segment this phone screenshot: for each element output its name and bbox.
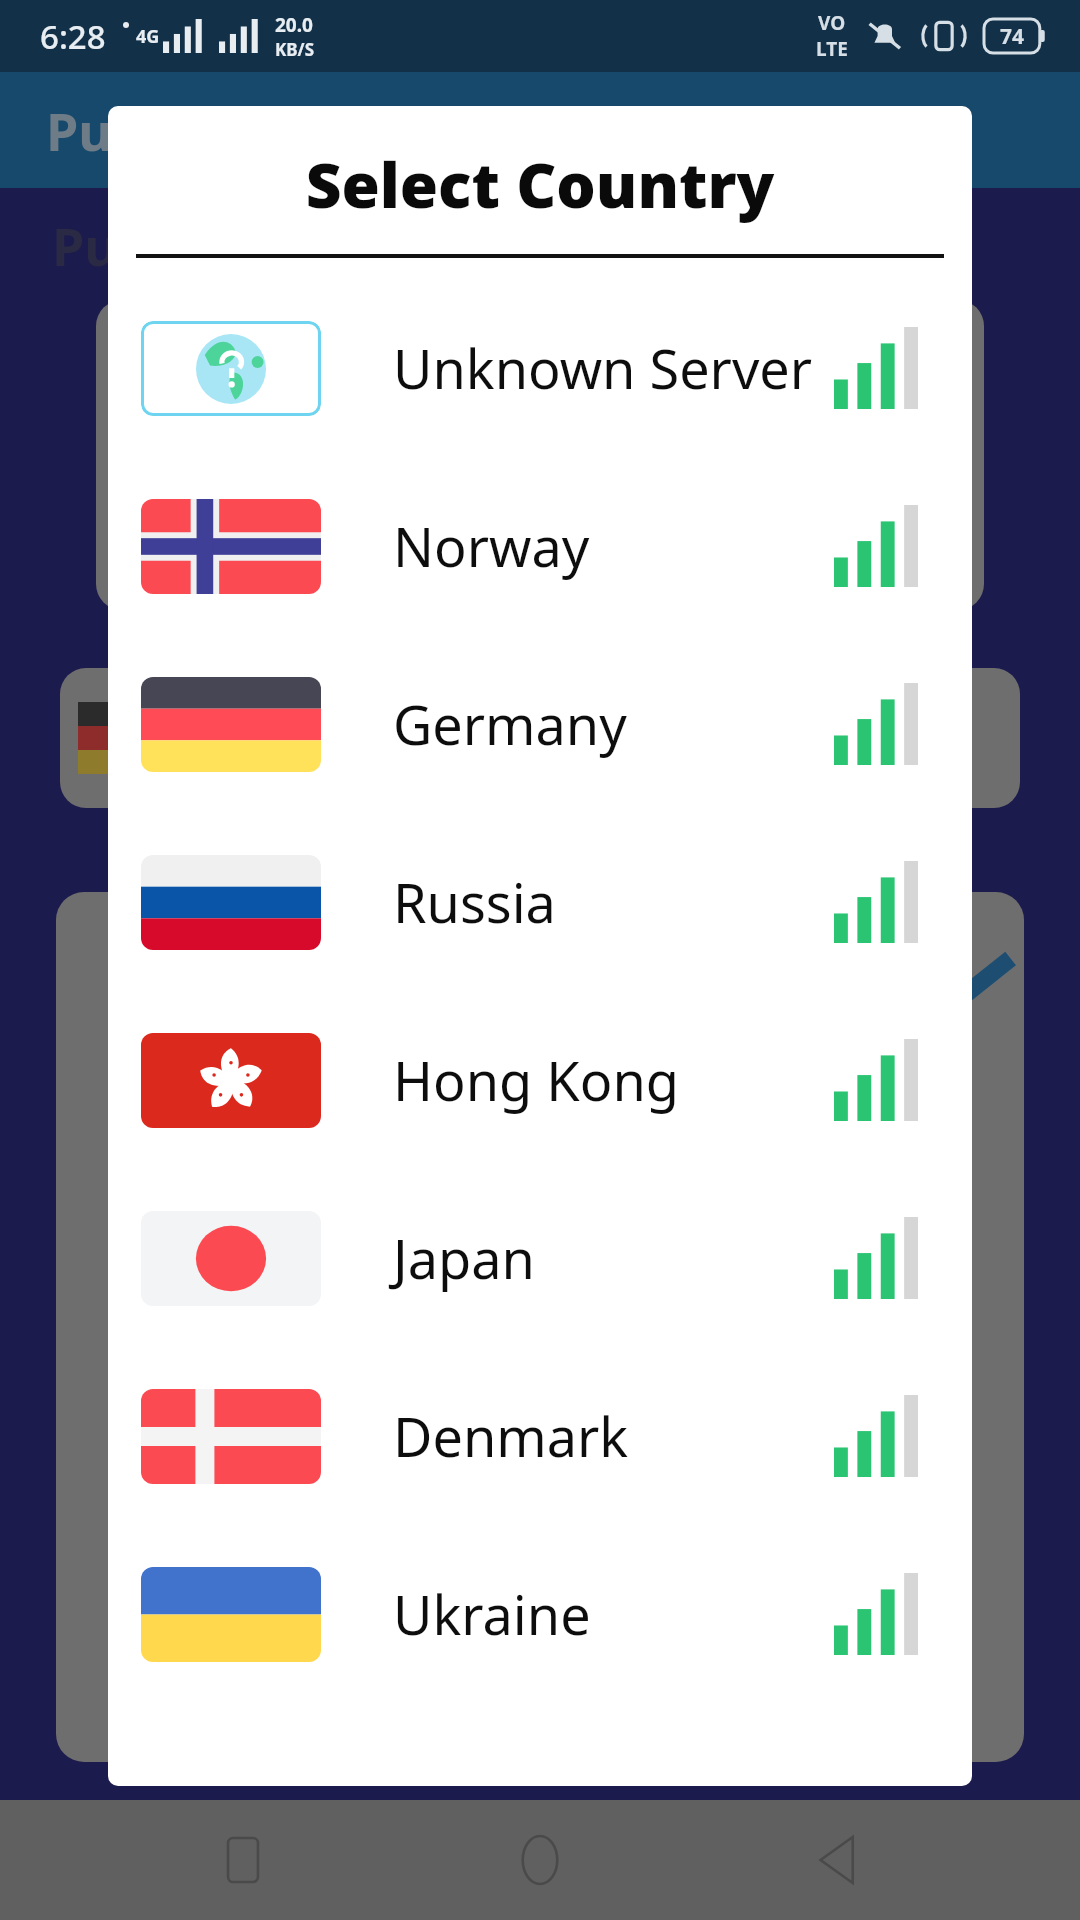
button[interactable]: Japan [122, 1184, 958, 1332]
staticText: 4G [136, 24, 160, 49]
staticText: Unknown Server [393, 331, 813, 405]
staticText: LTE [816, 36, 848, 62]
button[interactable]: Back [783, 1805, 893, 1915]
staticText: VO [818, 10, 846, 36]
button[interactable]: Home [485, 1805, 595, 1915]
button[interactable]: Unknown Server [122, 294, 958, 442]
staticText: Japan [393, 1221, 535, 1295]
button[interactable]: Ukraine [122, 1540, 958, 1688]
button[interactable]: Russia [122, 828, 958, 976]
staticText: 6:28 [40, 14, 106, 59]
staticText: Norway [393, 509, 590, 583]
staticText: Ukraine [393, 1577, 591, 1651]
staticText: Hong Kong [393, 1043, 679, 1117]
staticText: Pu [52, 210, 119, 281]
button[interactable]: Denmark [122, 1362, 958, 1510]
staticText: KB/S [275, 38, 315, 61]
button[interactable]: Recent apps [188, 1805, 298, 1915]
staticText: Germany [393, 687, 627, 761]
staticText: Russia [393, 865, 556, 939]
button[interactable]: Hong Kong [122, 1006, 958, 1154]
staticText: Pu [46, 95, 113, 166]
button[interactable]: Norway [122, 472, 958, 620]
staticText: Denmark [393, 1399, 629, 1473]
staticText: 20.0 [275, 12, 313, 38]
button[interactable]: Germany [122, 650, 958, 798]
staticText: 74 [1000, 22, 1025, 51]
staticText: Select Country [108, 142, 972, 226]
